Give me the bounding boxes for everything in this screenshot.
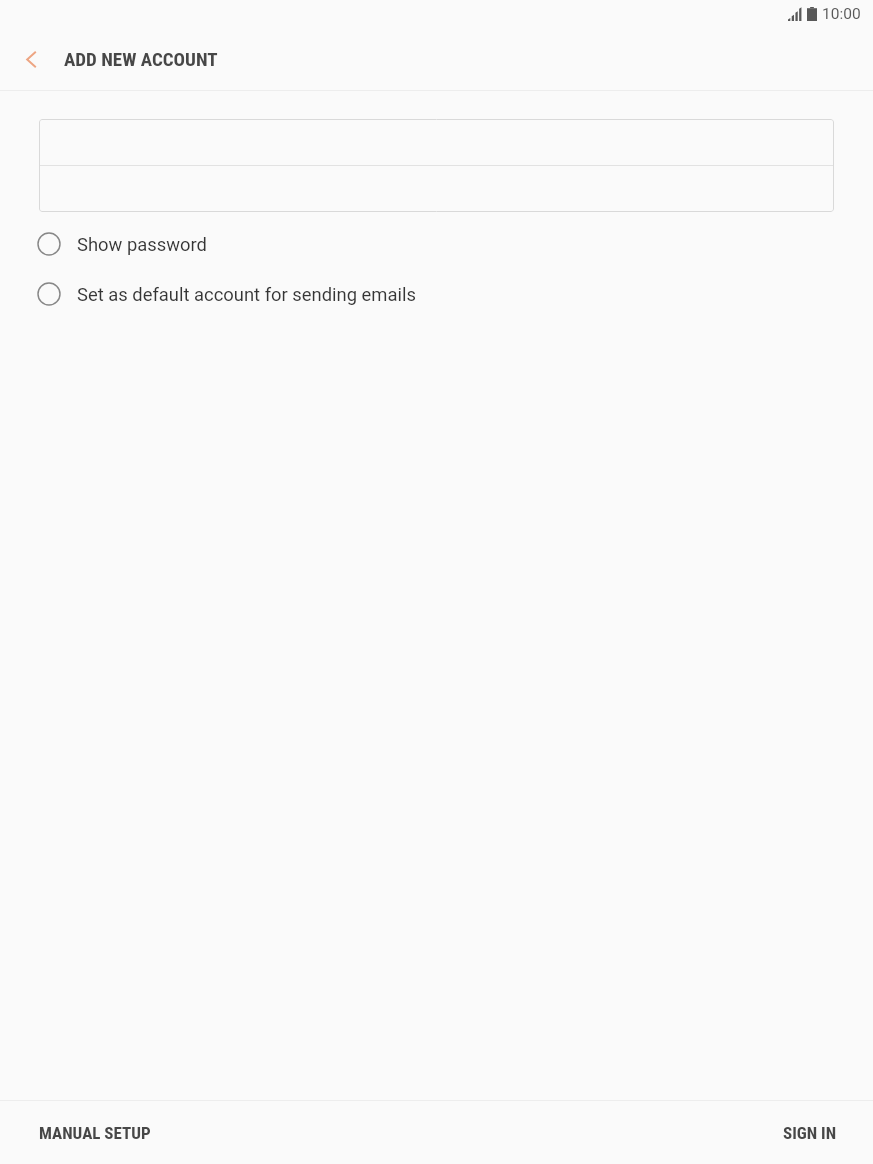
staticText: 10:00 [822,5,861,23]
staticText: MANUAL SETUP [39,1123,151,1143]
button[interactable]: Set as default account for sending email… [0,269,873,319]
staticText: Set as default account for sending email… [77,284,416,306]
button[interactable]: Back [0,29,61,90]
button[interactable]: SIGN IN [765,1111,855,1155]
staticText: ADD NEW ACCOUNT [64,48,218,70]
button[interactable]: Password [39,166,834,212]
staticText: Show password [77,234,207,256]
button[interactable]: MANUAL SETUP [21,1111,169,1155]
button[interactable]: Email address [39,119,834,165]
button[interactable]: Show password [0,219,873,269]
staticText: SIGN IN [783,1123,837,1143]
